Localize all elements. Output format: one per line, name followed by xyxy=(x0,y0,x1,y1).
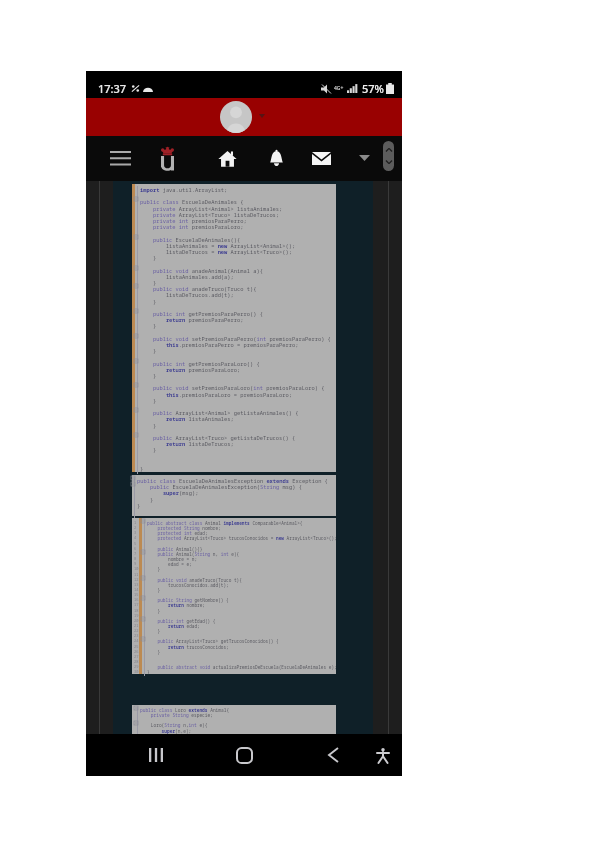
staticText: } xyxy=(147,566,161,572)
staticText: public abstract class Animal implements … xyxy=(147,520,303,526)
staticText: nombre = n; xyxy=(147,556,198,562)
button[interactable]: Recents xyxy=(139,738,173,772)
staticText: private ArrayList<Truco> listaDeTrucos; xyxy=(140,211,280,218)
staticText: 4 xyxy=(134,535,137,540)
staticText: return edad; xyxy=(147,623,200,629)
staticText: public ArrayList<Truco> getTrucosConocid… xyxy=(147,638,279,644)
button[interactable]: Back xyxy=(316,738,350,772)
staticText: } xyxy=(140,298,157,305)
staticText: public void setPremiosParaLoro(int premi… xyxy=(140,384,325,391)
staticText: 57% xyxy=(362,81,384,96)
staticText: 3 xyxy=(134,530,137,535)
staticText: 28 xyxy=(134,659,139,664)
staticText: 24 xyxy=(134,638,139,643)
staticText: listaAnimales = new ArrayList<Animal>(); xyxy=(140,242,296,249)
staticText: 4G+ xyxy=(334,85,344,92)
staticText: protected String nombre; xyxy=(147,525,221,531)
staticText: 5 xyxy=(134,541,137,546)
button[interactable]: Home xyxy=(227,738,261,772)
staticText: } xyxy=(140,372,157,379)
button[interactable]: Mail xyxy=(307,144,335,172)
staticText: 2 xyxy=(134,525,137,530)
button[interactable]: Profile xyxy=(220,101,252,133)
staticText: public EscuelaDeAnimalesException(String… xyxy=(137,483,302,490)
staticText: public int getPremiosParaLoro() { xyxy=(140,360,260,367)
button[interactable]: URJC home xyxy=(153,144,181,172)
staticText: } xyxy=(140,446,157,453)
staticText: return premiosParaLoro; xyxy=(140,366,241,373)
staticText: 20 xyxy=(134,618,139,623)
staticText: } xyxy=(140,322,157,329)
staticText: public class EscuelaDeAnimales { xyxy=(140,198,244,205)
staticText: public abstract void actualizaPremiosDeE… xyxy=(147,664,337,670)
staticText: } xyxy=(140,397,157,404)
staticText: 26 xyxy=(134,649,139,654)
staticText: 21 xyxy=(134,623,139,628)
staticText: especie = ""; xyxy=(140,733,197,739)
staticText: public int getPremiosParaPerro() { xyxy=(140,310,263,317)
staticText: 8 xyxy=(134,556,137,561)
staticText: 10 xyxy=(134,566,139,571)
staticText: listaDeTrucos.add(t); xyxy=(140,291,234,298)
staticText: 6 xyxy=(134,546,137,551)
staticText: Loro(String n,int e){ xyxy=(140,722,208,728)
staticText: public class Loro extends Animal{ xyxy=(140,707,230,713)
staticText: 16 xyxy=(134,597,139,602)
staticText: super(msg); xyxy=(137,489,199,496)
staticText: 17:37 xyxy=(98,81,127,96)
staticText: return premiosParaPerro; xyxy=(140,316,244,323)
staticText: return listaAnimales; xyxy=(140,415,234,422)
staticText: 25 xyxy=(134,644,139,649)
staticText: 30 xyxy=(134,669,139,674)
staticText: this.premiosParaLoro = premiosParaLoro; xyxy=(140,391,293,398)
staticText: 23 xyxy=(134,633,139,638)
button[interactable]: Menu xyxy=(106,144,134,172)
staticText: } xyxy=(147,628,161,634)
staticText: return listaDeTrucos; xyxy=(140,440,234,447)
staticText: public void setPremiosParaPerro(int prem… xyxy=(140,335,331,342)
button[interactable]: Accessibility xyxy=(366,738,400,772)
staticText: public String getNombre() { xyxy=(147,597,229,603)
staticText: } xyxy=(147,669,150,675)
staticText: 22 xyxy=(134,628,139,633)
staticText: protected ArrayList<Truco> trucosConocid… xyxy=(147,535,337,541)
staticText: } xyxy=(140,465,144,472)
staticText: super(n,e); xyxy=(140,728,192,734)
button[interactable]: Notifications xyxy=(262,144,290,172)
staticText: } xyxy=(147,587,161,593)
staticText: public Animal(){} xyxy=(147,546,203,552)
staticText: public class EscuelaDeAnimalesException … xyxy=(137,477,328,484)
staticText: return nombre; xyxy=(147,602,205,608)
staticText: } xyxy=(140,279,157,286)
staticText: private ArrayList<Animal> listaAnimales; xyxy=(140,205,283,212)
staticText: public ArrayList<Animal> getListaAnimale… xyxy=(140,409,299,416)
staticText: 29 xyxy=(134,664,139,669)
button[interactable]: Account menu xyxy=(255,109,269,123)
button[interactable]: Scroll up and down xyxy=(383,141,394,171)
button[interactable]: Home xyxy=(213,144,241,172)
staticText: protected int edad; xyxy=(147,530,208,536)
staticText: 19 xyxy=(134,613,139,618)
staticText: private int premiosParaLoro; xyxy=(140,223,244,230)
staticText: public void anadeAnimal(Animal a){ xyxy=(140,267,263,274)
staticText: 17 xyxy=(134,602,139,607)
staticText: 13 xyxy=(134,582,139,587)
staticText: } xyxy=(140,347,157,354)
staticText: } xyxy=(137,502,141,509)
staticText: } xyxy=(147,608,161,614)
staticText: } xyxy=(140,422,157,429)
staticText: public EscuelaDeAnimales(){ xyxy=(140,236,241,243)
staticText: } xyxy=(147,649,161,655)
staticText: import java.util.ArrayList; xyxy=(140,186,228,193)
staticText: public ArrayList<Truco> getListaDeTrucos… xyxy=(140,434,296,441)
staticText: 11 xyxy=(134,572,139,577)
button[interactable]: More options xyxy=(350,144,378,172)
staticText: 18 xyxy=(134,608,139,613)
staticText: edad = e; xyxy=(147,561,192,567)
staticText: 15 xyxy=(134,592,139,597)
staticText: return trucosConocidos; xyxy=(147,644,229,650)
staticText: public void anadeTruco(Truco t){ xyxy=(147,577,242,583)
staticText: trucosConocidos.add(t); xyxy=(147,582,229,588)
